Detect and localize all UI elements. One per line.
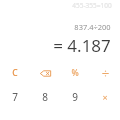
staticText: 8	[42, 90, 48, 104]
staticText: 455-355=100	[72, 1, 112, 10]
button[interactable]: Backspace	[30, 66, 60, 80]
button[interactable]: %	[60, 66, 90, 80]
staticText: ×	[102, 91, 108, 103]
button[interactable]: C	[0, 66, 30, 80]
staticText: %	[71, 67, 79, 79]
button[interactable]: 7	[0, 90, 30, 104]
staticText: 837.4÷200	[74, 22, 111, 32]
button[interactable]: 8	[30, 90, 60, 104]
button[interactable]: ×	[90, 90, 120, 104]
staticText: = 4.187	[53, 34, 111, 57]
button[interactable]: 9	[60, 90, 90, 104]
staticText: 9	[72, 90, 78, 104]
staticText: C	[12, 67, 18, 79]
staticText: 7	[12, 90, 18, 104]
button[interactable]	[90, 66, 120, 80]
